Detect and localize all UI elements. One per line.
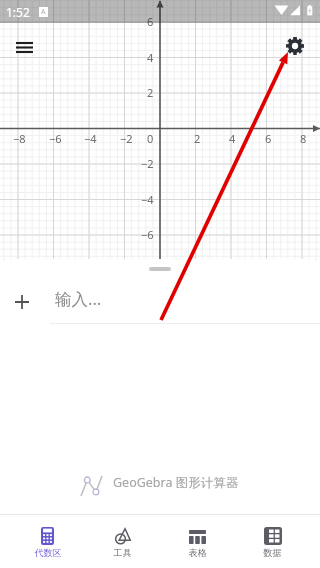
staticText: 8 [300,131,307,146]
button[interactable]: Settings [279,30,311,62]
button[interactable]: 工具 [85,515,160,568]
staticText: −4 [84,131,97,146]
button[interactable]: Menu [8,31,40,63]
staticText: 输入... [55,287,102,310]
staticText: GeoGebra 图形计算器 [113,474,239,491]
staticText: −2 [141,156,154,171]
staticText: 2 [147,85,154,100]
staticText: −4 [141,192,154,207]
staticText: −6 [141,227,154,242]
button[interactable]: 代数区 [10,515,85,568]
staticText: 1:52 [6,4,30,20]
button[interactable]: 输入... [0,278,320,325]
staticText: 0 [147,131,154,146]
staticText: 工具 [113,547,132,559]
staticText: A [41,7,46,17]
button[interactable]: 数据 [235,515,310,568]
staticText: 4 [229,131,236,146]
staticText: −2 [120,131,133,146]
staticText: 6 [265,131,272,146]
staticText: 2 [194,131,201,146]
staticText: 数据 [263,547,282,559]
staticText: −8 [13,131,26,146]
staticText: −6 [49,131,62,146]
staticText: 6 [147,14,154,29]
button[interactable]: 表格 [160,515,235,568]
staticText: 代数区 [34,547,62,559]
staticText: 表格 [188,547,207,559]
staticText: 4 [147,50,154,65]
